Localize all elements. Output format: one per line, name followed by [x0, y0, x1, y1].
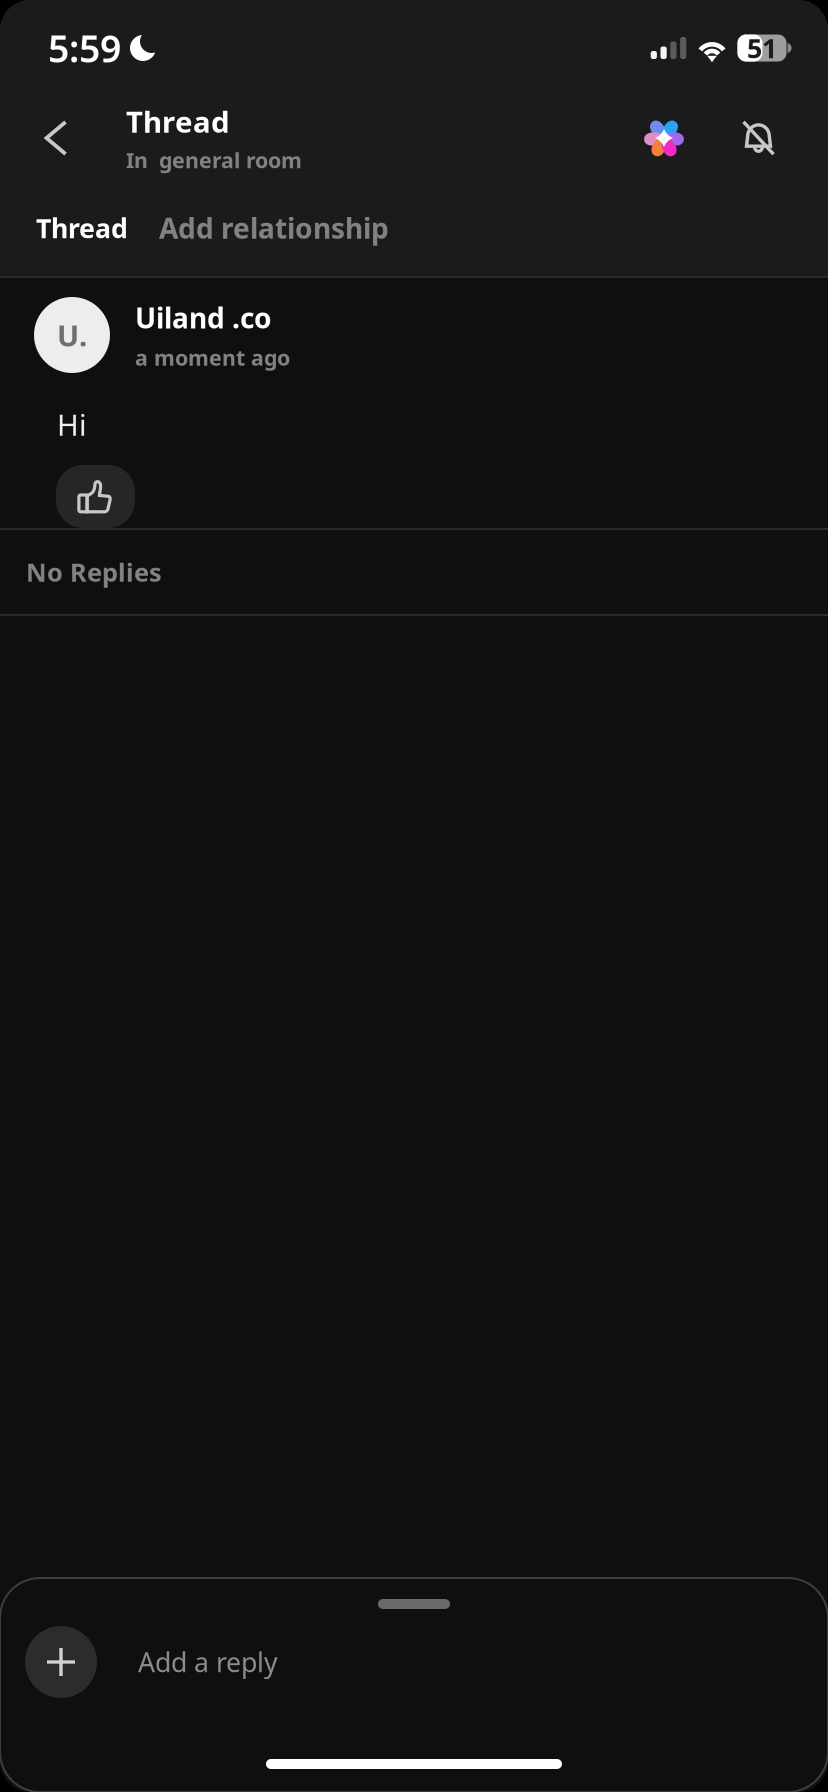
button[interactable]: Thread	[26, 192, 138, 264]
button[interactable]: Apple Intelligence	[628, 100, 700, 176]
staticText: In	[126, 146, 148, 174]
staticText: general room	[159, 146, 302, 174]
staticText: Thread	[36, 210, 128, 246]
staticText: No Replies	[26, 555, 162, 589]
button[interactable]: Add a reply	[138, 1626, 450, 1698]
staticText: Thread	[126, 102, 230, 141]
staticText: U.	[57, 315, 87, 354]
button[interactable]: Add attachment	[25, 1626, 97, 1698]
staticText: 51	[747, 30, 777, 66]
button[interactable]: React thumbs up	[56, 465, 135, 528]
staticText: 5:59	[48, 23, 121, 73]
button[interactable]: Mute notifications	[721, 100, 796, 176]
staticText: Hi	[57, 405, 87, 444]
staticText: Uiland .co	[135, 299, 272, 336]
staticText: Add relationship	[159, 209, 389, 247]
staticText: Add a reply	[138, 1644, 278, 1680]
button[interactable]: Back	[17, 100, 95, 176]
button[interactable]: Add relationship	[149, 192, 399, 264]
staticText: a moment ago	[135, 343, 290, 371]
